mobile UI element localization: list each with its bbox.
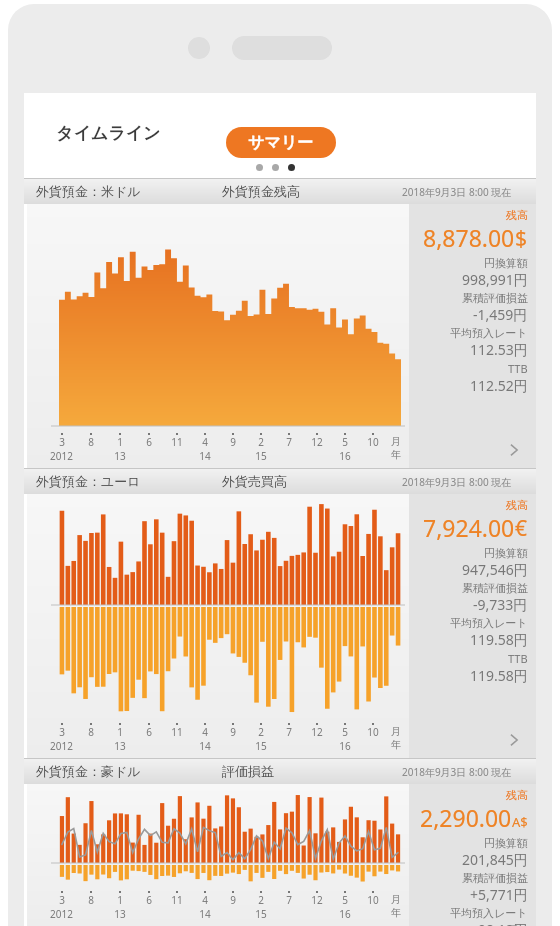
staticText: 14 <box>199 907 211 921</box>
staticText: 14 <box>199 449 211 463</box>
staticText: 外貨預金：豪ドル <box>36 763 141 779</box>
staticText: 10 <box>367 893 379 907</box>
staticText: 9 <box>230 435 236 449</box>
staticText: 累積評価損益 <box>462 871 528 885</box>
staticText: 4 <box>202 435 208 449</box>
staticText: 外貨預金：米ドル <box>36 183 141 199</box>
staticText: 11 <box>171 893 183 907</box>
button[interactable]: 外貨預金：豪ドル <box>24 758 536 926</box>
staticText: 円換算額 <box>484 256 528 270</box>
staticText: 119.58円 <box>470 630 528 649</box>
staticText: 1 <box>117 893 123 907</box>
staticText: 16 <box>339 449 351 463</box>
staticText: 4 <box>202 893 208 907</box>
staticText: 外貨預金残高 <box>222 183 300 199</box>
staticText: 3 <box>59 725 65 739</box>
staticText: 6 <box>146 893 152 907</box>
staticText: 15 <box>255 449 267 463</box>
staticText: 119.58円 <box>470 666 528 685</box>
staticText: 月 <box>391 725 401 738</box>
staticText: 4 <box>202 725 208 739</box>
button[interactable]: 詳細を見る <box>504 440 524 460</box>
staticText: 7 <box>286 435 292 449</box>
button[interactable]: 詳細を見る <box>504 730 524 750</box>
staticText: 2012 <box>50 739 73 753</box>
staticText: 残高 <box>506 788 528 802</box>
staticText: $ <box>515 224 528 253</box>
button[interactable]: サマリー <box>226 127 336 158</box>
staticText: 2,290.00 <box>420 802 512 833</box>
staticText: 2 <box>258 435 264 449</box>
staticText: 12 <box>311 725 323 739</box>
staticText: 201,845円 <box>462 850 528 869</box>
staticText: 累積評価損益 <box>462 291 528 305</box>
staticText: 8,878.00 <box>423 222 515 253</box>
staticText: 5 <box>342 893 348 907</box>
button[interactable]: 外貨預金：ユーロ <box>24 468 536 758</box>
staticText: 13 <box>114 449 126 463</box>
staticText: € <box>515 514 528 543</box>
staticText: 98.12円 <box>478 920 528 926</box>
staticText: 外貨売買高 <box>222 473 287 489</box>
staticText: 8 <box>88 725 94 739</box>
button[interactable]: タイムライン <box>56 123 161 144</box>
staticText: 平均預入レート <box>450 616 528 630</box>
staticText: 6 <box>146 435 152 449</box>
staticText: 1 <box>117 725 123 739</box>
staticText: 残高 <box>506 208 528 222</box>
staticText: 947,546円 <box>462 560 528 579</box>
staticText: 16 <box>339 739 351 753</box>
staticText: 16 <box>339 907 351 921</box>
staticText: 6 <box>146 725 152 739</box>
staticText: -9,733円 <box>473 595 528 614</box>
staticText: 7 <box>286 893 292 907</box>
staticText: 3 <box>59 435 65 449</box>
staticText: 平均預入レート <box>450 906 528 920</box>
staticText: 年 <box>391 448 401 461</box>
staticText: 10 <box>367 725 379 739</box>
staticText: 2 <box>258 725 264 739</box>
staticText: 円換算額 <box>484 546 528 560</box>
staticText: 13 <box>114 907 126 921</box>
staticText: 14 <box>199 739 211 753</box>
staticText: 2012 <box>50 449 73 463</box>
staticText: A$ <box>512 813 528 831</box>
button[interactable]: 外貨預金：米ドル <box>24 178 536 468</box>
staticText: 998,991円 <box>462 270 528 289</box>
staticText: 月 <box>391 435 401 448</box>
staticText: 2018年9月3日 8:00 現在 <box>402 765 512 779</box>
staticText: 8 <box>88 893 94 907</box>
staticText: 5 <box>342 435 348 449</box>
staticText: 10 <box>367 435 379 449</box>
staticText: 1 <box>117 435 123 449</box>
staticText: 2012 <box>50 907 73 921</box>
staticText: 7 <box>286 725 292 739</box>
staticText: 15 <box>255 739 267 753</box>
staticText: 2 <box>258 893 264 907</box>
staticText: 2018年9月3日 8:00 現在 <box>402 475 512 489</box>
staticText: 年 <box>391 738 401 751</box>
staticText: 平均預入レート <box>450 326 528 340</box>
staticText: 5 <box>342 725 348 739</box>
staticText: 112.53円 <box>470 340 528 359</box>
staticText: 13 <box>114 739 126 753</box>
staticText: 8 <box>88 435 94 449</box>
staticText: 年 <box>391 906 401 919</box>
staticText: +5,771円 <box>470 885 528 904</box>
staticText: 残高 <box>506 498 528 512</box>
staticText: 円換算額 <box>484 836 528 850</box>
staticText: 9 <box>230 725 236 739</box>
staticText: 評価損益 <box>222 763 274 779</box>
staticText: TTB <box>508 361 528 376</box>
staticText: 累積評価損益 <box>462 581 528 595</box>
staticText: 11 <box>171 725 183 739</box>
staticText: 月 <box>391 893 401 906</box>
staticText: 9 <box>230 893 236 907</box>
staticText: 112.52円 <box>470 376 528 395</box>
staticText: 7,924.00 <box>423 512 515 543</box>
staticText: サマリー <box>248 133 314 153</box>
staticText: 12 <box>311 893 323 907</box>
staticText: TTB <box>508 651 528 666</box>
staticText: 3 <box>59 893 65 907</box>
staticText: -1,459円 <box>473 305 528 324</box>
